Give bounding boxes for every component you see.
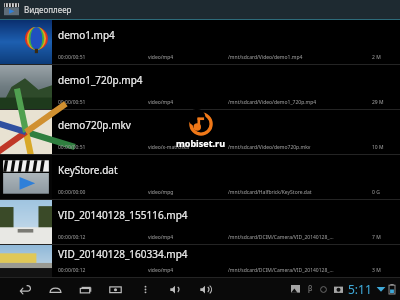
button[interactable]: demo1.mp4 <box>0 20 400 65</box>
staticText: 00:00/00:51 <box>58 144 86 151</box>
staticText: video/mp4 <box>148 267 174 274</box>
button[interactable]: Home <box>40 278 70 300</box>
button[interactable]: VID_20140128_160334.mp4 <box>0 245 400 278</box>
staticText: 00:00/00:12 <box>58 234 86 241</box>
staticText: 00:00/00:51 <box>58 99 86 106</box>
staticText: 00:00/00:12 <box>58 267 86 274</box>
button[interactable]: demo1_720p.mp4 <box>0 65 400 110</box>
staticText: KeyStore.dat <box>58 163 118 177</box>
button[interactable]: Screenshot <box>100 278 130 300</box>
staticText: demo1_720p.mp4 <box>58 73 143 87</box>
staticText: /mnt/sdcard/DCIM/Camera/VID_20140128_... <box>228 267 334 274</box>
button[interactable]: Volume up <box>190 278 220 300</box>
staticText: demo720p.mkv <box>58 118 131 132</box>
staticText: Видеоплеер <box>24 4 72 15</box>
button[interactable]: demo720p.mkv <box>0 110 400 155</box>
staticText: 3 M <box>372 267 381 274</box>
button[interactable]: Menu <box>130 278 160 300</box>
staticText: VID_20140128_155116.mp4 <box>58 208 188 222</box>
button[interactable]: Recents <box>70 278 100 300</box>
staticText: 7 M <box>372 234 381 241</box>
staticText: 00:00/00:00 <box>58 189 86 196</box>
staticText: video/mp4 <box>148 54 174 61</box>
staticText: β <box>308 284 313 294</box>
staticText: video/mp4 <box>148 99 174 106</box>
staticText: 5:11 <box>348 281 372 297</box>
staticText: 10 M <box>372 144 384 151</box>
staticText: /mnt/sdcard/Video/demo720p.mkv <box>228 144 311 151</box>
button[interactable]: KeyStore.dat <box>0 155 400 200</box>
button[interactable]: Back <box>10 278 40 300</box>
staticText: /mnt/sdcard/Halfbrick/KeyStore.dat <box>228 189 312 196</box>
staticText: /mnt/sdcard/Video/demo1_720p.mp4 <box>228 99 317 106</box>
staticText: video/mpg <box>148 189 174 196</box>
button[interactable]: Видеоплеер <box>0 0 400 19</box>
button[interactable]: VID_20140128_155116.mp4 <box>0 200 400 245</box>
staticText: 29 M <box>372 99 384 106</box>
staticText: video/x-matroska <box>148 144 190 151</box>
staticText: 00:00/00:51 <box>58 54 86 61</box>
staticText: VID_20140128_160334.mp4 <box>58 247 188 261</box>
staticText: /mnt/sdcard/DCIM/Camera/VID_20140128_... <box>228 234 334 241</box>
staticText: video/mp4 <box>148 234 174 241</box>
staticText: mobiset.ru <box>176 137 225 149</box>
staticText: /mnt/sdcard/Video/demo1.mp4 <box>228 54 303 61</box>
staticText: 0 G <box>372 189 380 196</box>
button[interactable]: Volume down <box>160 278 190 300</box>
staticText: 2 M <box>372 54 381 61</box>
staticText: demo1.mp4 <box>58 28 115 42</box>
